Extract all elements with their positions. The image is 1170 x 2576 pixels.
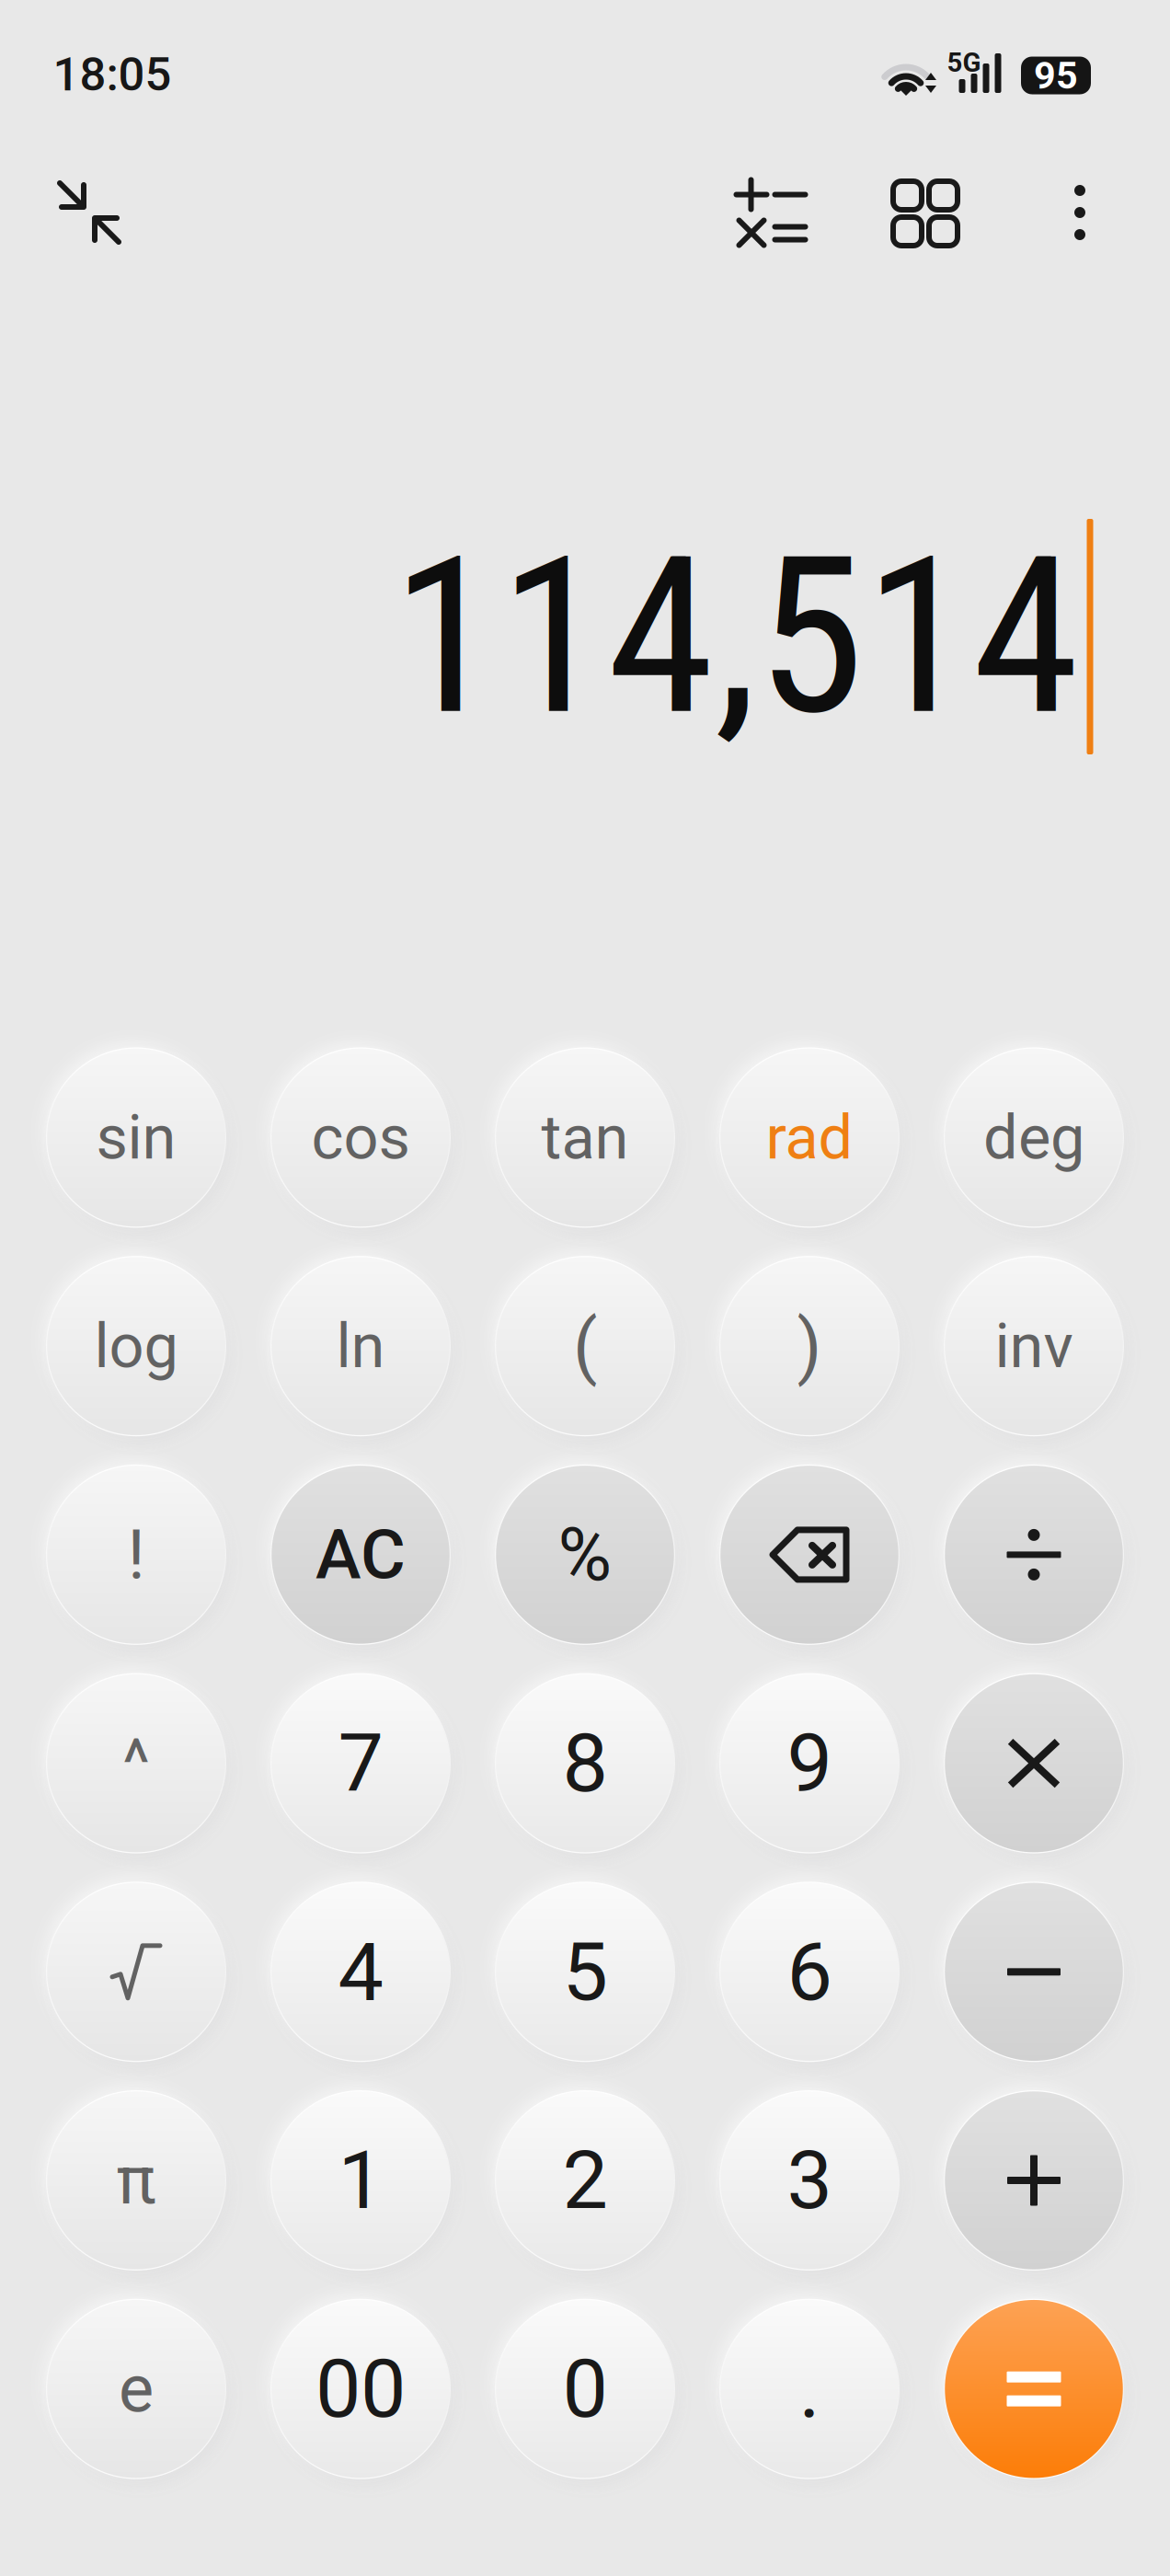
staticText: 5G [947,47,981,78]
button[interactable]: Operators [716,157,826,268]
button[interactable]: Collapse [34,157,144,268]
staticText: log [94,1310,178,1382]
button[interactable]: 5 [495,1882,675,2062]
staticText: 1 [338,2133,383,2228]
button[interactable]: ! [46,1465,226,1645]
button[interactable]: 4 [270,1882,451,2062]
staticText: deg [983,1102,1084,1173]
button[interactable]: 6 [719,1882,900,2062]
staticText: 18:05 [53,47,172,102]
button[interactable]: ^ [46,1673,226,1853]
button[interactable]: AC [270,1465,451,1645]
button[interactable] [944,2090,1124,2271]
button[interactable] [944,1882,1124,2062]
staticText: . [799,2341,820,2436]
button[interactable] [944,2299,1124,2479]
button[interactable]: e [46,2299,226,2479]
button[interactable] [944,1465,1124,1645]
staticText: rad [766,1102,853,1173]
button[interactable]: deg [944,1047,1124,1228]
button[interactable]: 0 [495,2299,675,2479]
staticText: 2 [562,2133,608,2228]
button[interactable]: 9 [719,1673,900,1853]
button[interactable]: ( [495,1256,675,1436]
button[interactable]: 2 [495,2090,675,2271]
button[interactable]: 8 [495,1673,675,1853]
button[interactable]: 1 [270,2090,451,2271]
button[interactable] [46,1882,226,2062]
staticText: 4 [338,1924,383,2019]
staticText: 6 [787,1924,832,2019]
staticText: cos [311,1102,410,1173]
staticText: 3 [787,2133,832,2228]
staticText: 114,514 [392,509,1080,764]
staticText: 5 [562,1924,608,2019]
button[interactable]: cos [270,1047,451,1228]
staticText: 0 [562,2341,608,2436]
button[interactable] [944,1673,1124,1853]
button[interactable]: Converters [870,158,981,269]
staticText: ( [573,1304,597,1388]
button[interactable]: inv [944,1256,1124,1436]
staticText: 8 [562,1716,608,1811]
staticText: 9 [787,1716,832,1811]
button[interactable]: 00 [270,2299,451,2479]
button[interactable]: 7 [270,1673,451,1853]
button[interactable]: ln [270,1256,451,1436]
staticText: ! [127,1514,145,1595]
staticText: 00 [315,2341,406,2436]
button[interactable]: tan [495,1047,675,1228]
staticText: 95 [1034,53,1078,98]
staticText: % [558,1512,612,1598]
staticText: π [116,2142,156,2219]
staticText: tan [541,1102,629,1173]
staticText: ) [797,1304,822,1388]
staticText: AC [315,1514,406,1595]
button[interactable]: . [719,2299,900,2479]
staticText: ln [336,1310,385,1382]
button[interactable]: log [46,1256,226,1436]
staticText: inv [995,1310,1073,1382]
staticText: sin [96,1102,176,1173]
staticText: 7 [338,1716,383,1811]
button[interactable]: rad [719,1047,900,1228]
button[interactable]: π [46,2090,226,2271]
button[interactable]: sin [46,1047,226,1228]
button[interactable]: 3 [719,2090,900,2271]
button[interactable]: More options [1039,157,1120,268]
button[interactable] [719,1465,900,1645]
staticText: e [119,2350,154,2428]
button[interactable]: ) [719,1256,900,1436]
staticText: ^ [122,1724,150,1802]
button[interactable]: % [495,1465,675,1645]
